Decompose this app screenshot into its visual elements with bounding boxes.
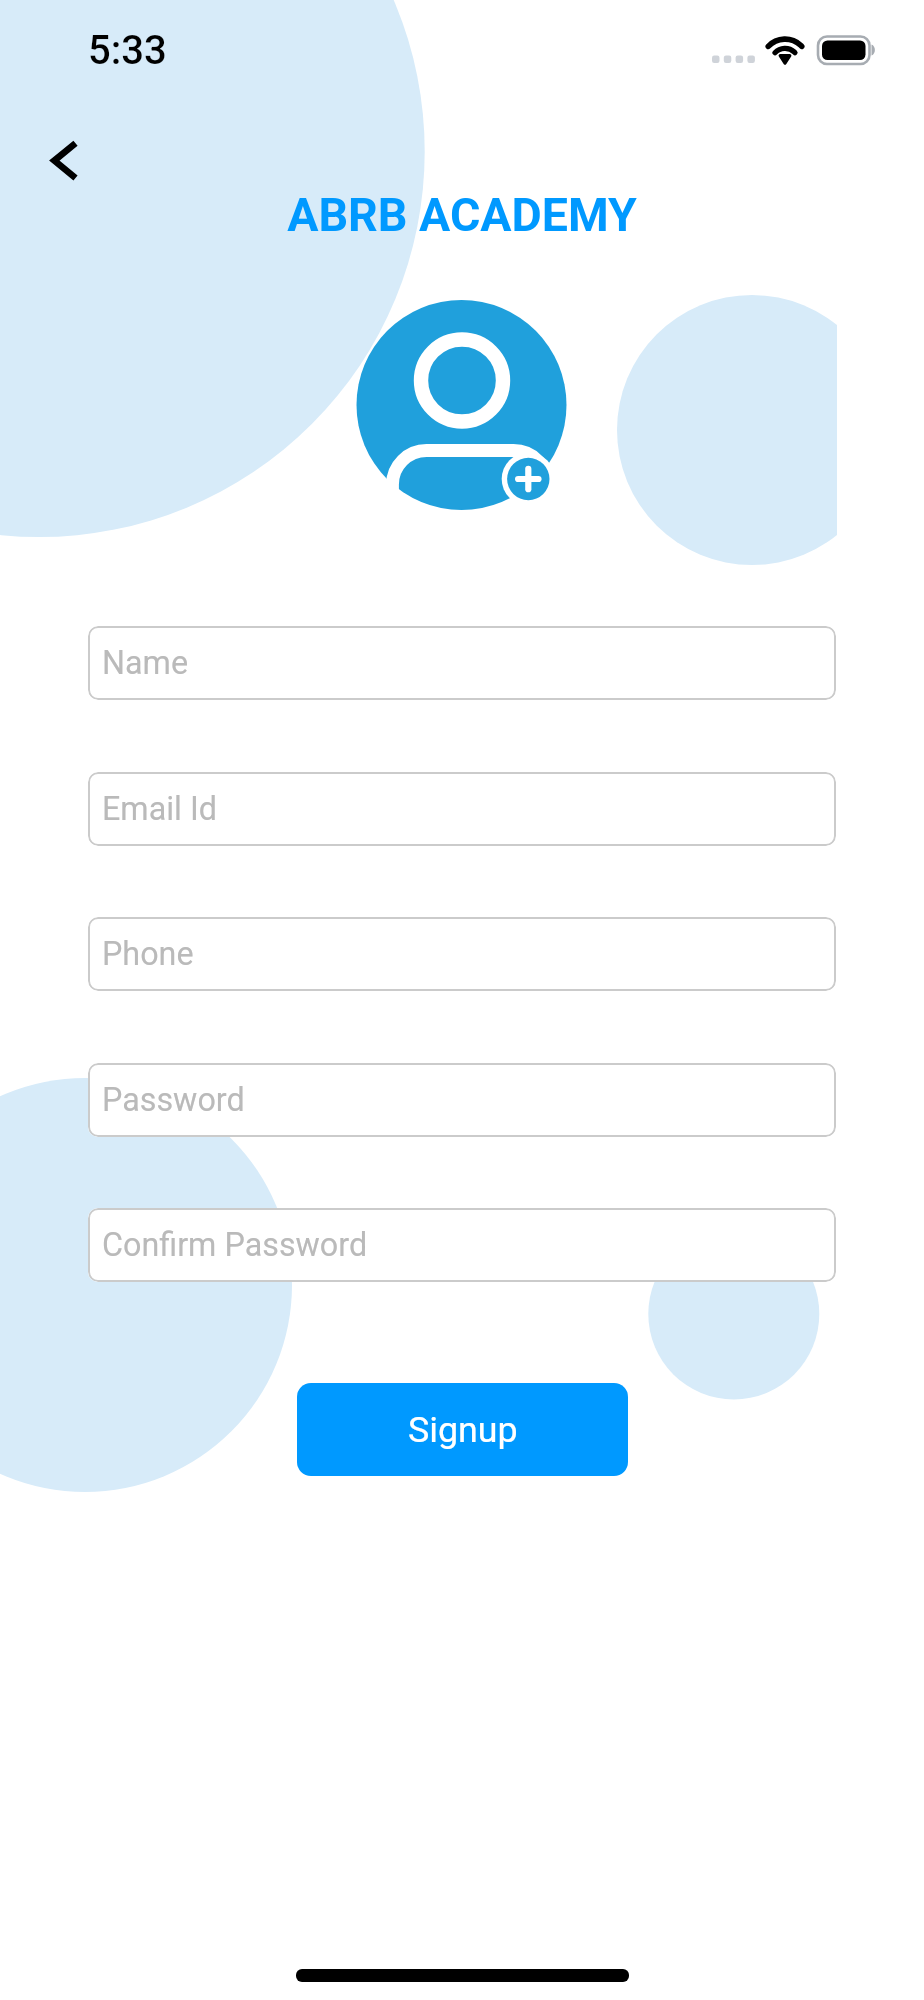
button[interactable]: Back: [22, 124, 96, 198]
button[interactable]: Password: [88, 1063, 836, 1137]
staticText: Password: [102, 1081, 245, 1119]
button[interactable]: Phone: [88, 917, 836, 991]
staticText: Confirm Password: [102, 1226, 368, 1264]
staticText: Phone: [102, 935, 194, 973]
button[interactable]: Name: [88, 626, 836, 700]
staticText: 5:33: [88, 27, 167, 74]
staticText: Email Id: [102, 790, 217, 828]
button[interactable]: Signup: [297, 1383, 628, 1476]
staticText: Signup: [408, 1409, 518, 1451]
staticText: ABRB ACADEMY: [0, 188, 924, 242]
staticText: Name: [102, 644, 189, 682]
button[interactable]: Email Id: [88, 772, 836, 846]
button[interactable]: Confirm Password: [88, 1208, 836, 1282]
